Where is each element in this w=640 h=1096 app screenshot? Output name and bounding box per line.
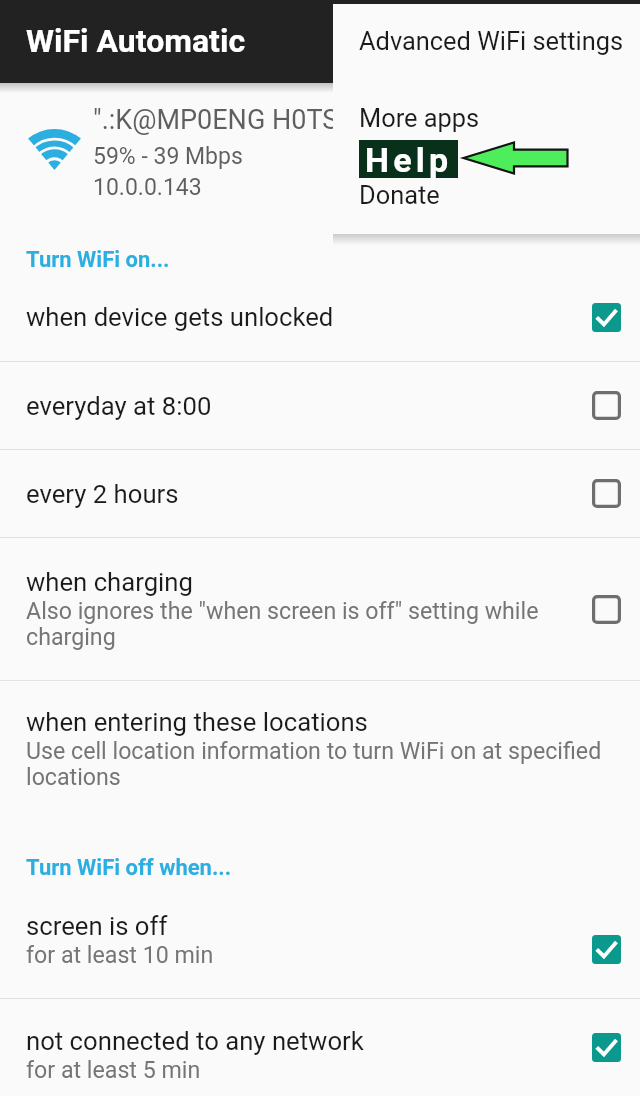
button[interactable]: not connected to any network (0, 999, 640, 1096)
staticText: 10.0.0.143 (93, 174, 202, 201)
staticText: when charging (26, 567, 193, 597)
staticText: WiFi Automatic (26, 22, 246, 60)
staticText: Advanced WiFi settings (359, 26, 624, 56)
staticText: More apps (359, 103, 480, 133)
button[interactable]: everyday at 8:00 (0, 362, 640, 449)
staticText: ".:K@MP0ENG H0TSP0T" (93, 104, 396, 136)
button[interactable]: when device gets unlocked (0, 273, 640, 361)
button[interactable]: ".:K@MP0ENG H0TSP0T" (0, 92, 640, 202)
staticText: every 2 hours (26, 479, 179, 509)
staticText: when device gets unlocked (26, 302, 334, 332)
staticText: for at least 10 min (26, 941, 214, 968)
staticText: Donate (359, 180, 440, 210)
button[interactable]: when entering these locations (0, 681, 640, 821)
staticText: 59% - 39 Mbps (93, 143, 243, 170)
staticText: Use cell location information to turn Wi… (26, 737, 618, 791)
button[interactable]: Donate (333, 176, 640, 214)
staticText: screen is off (26, 911, 168, 941)
staticText: when entering these locations (26, 707, 368, 737)
staticText: everyday at 8:00 (26, 391, 212, 421)
button[interactable]: every 2 hours (0, 450, 640, 537)
button[interactable]: Advanced WiFi settings (333, 22, 640, 60)
staticText: Turn WiFi on... (26, 247, 170, 273)
staticText: Turn WiFi off when... (26, 855, 232, 881)
button[interactable]: when charging (0, 538, 640, 680)
staticText: not connected to any network (26, 1026, 364, 1056)
other: Help pointer (462, 141, 569, 175)
button[interactable]: Help (359, 140, 458, 178)
button[interactable]: More apps (333, 99, 640, 137)
staticText: Help (365, 140, 453, 178)
staticText: Also ignores the "when screen is off" se… (26, 597, 582, 651)
button[interactable]: screen is off (0, 900, 640, 998)
staticText: for at least 5 min (26, 1056, 201, 1083)
